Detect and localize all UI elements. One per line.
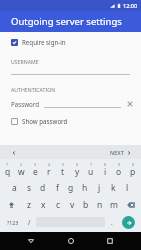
button[interactable]: 7 — [84, 161, 98, 179]
button[interactable]: Home — [63, 233, 79, 249]
staticText: ?123 — [7, 219, 19, 226]
staticText: 4 — [48, 162, 51, 167]
staticText: o — [116, 166, 122, 178]
staticText: q — [5, 166, 11, 178]
staticText: j — [98, 182, 101, 194]
staticText: s — [27, 182, 32, 194]
staticText: w — [18, 166, 25, 178]
button[interactable]: Require sign-in — [0, 36, 141, 48]
button[interactable]: f — [50, 179, 64, 196]
button[interactable]: s — [22, 179, 36, 196]
button[interactable]: 0 — [126, 161, 140, 179]
button[interactable]: Show password — [0, 116, 141, 126]
button[interactable]: Clear password — [125, 99, 135, 109]
button[interactable]: m — [107, 196, 121, 213]
staticText: USERNAME — [11, 58, 39, 65]
button[interactable]: c — [51, 196, 65, 213]
staticText: 2 — [20, 162, 23, 167]
staticText: i — [104, 166, 107, 178]
staticText: r — [47, 166, 51, 178]
staticText: 5 — [62, 162, 65, 167]
button[interactable]: NEXT — [108, 147, 133, 158]
staticText: l — [126, 182, 129, 194]
staticText: h — [82, 182, 88, 194]
button[interactable]: ?123 — [2, 214, 23, 230]
button[interactable]: n — [93, 196, 107, 213]
staticText: 0 — [132, 162, 135, 167]
button[interactable]: 2 — [14, 161, 28, 179]
staticText: t — [61, 166, 65, 178]
button[interactable]: Back — [23, 233, 39, 249]
staticText: z — [27, 199, 31, 211]
staticText: v — [70, 199, 75, 211]
button[interactable]: x — [36, 196, 51, 213]
staticText: g — [68, 182, 74, 194]
button[interactable]: 4 — [42, 161, 56, 179]
button[interactable]: 1 — [1, 161, 14, 179]
staticText: NEXT — [110, 149, 124, 156]
staticText: d — [40, 182, 46, 194]
staticText: 8 — [104, 162, 107, 167]
staticText: 12:00 — [123, 2, 138, 9]
staticText: Require sign-in — [22, 38, 66, 46]
button[interactable]: a — [7, 179, 22, 196]
button[interactable]: h — [78, 179, 92, 196]
staticText: Show password — [22, 117, 68, 125]
button[interactable]: 5 — [56, 161, 70, 179]
staticText: 6 — [76, 162, 79, 167]
staticText: p — [130, 166, 136, 178]
button[interactable]: v — [65, 196, 79, 213]
staticText: y — [75, 166, 80, 178]
button[interactable]: 3 — [28, 161, 42, 179]
button[interactable]: j — [92, 179, 106, 196]
staticText: n — [97, 199, 103, 211]
button[interactable]: / — [23, 214, 36, 230]
staticText: b — [83, 199, 89, 211]
staticText: a — [12, 182, 17, 194]
button[interactable]: Backspace — [121, 196, 140, 213]
staticText: . — [111, 218, 113, 227]
button[interactable]: l — [120, 179, 134, 196]
button[interactable]: Next — [122, 216, 135, 229]
button[interactable]: Previous field — [8, 147, 19, 158]
button[interactable]: Shift — [1, 196, 21, 213]
staticText: f — [56, 182, 59, 194]
button[interactable]: d — [36, 179, 50, 196]
staticText: Outgoing server settings — [11, 15, 122, 28]
button[interactable]: 6 — [70, 161, 84, 179]
staticText: 3 — [34, 162, 37, 167]
button[interactable]: g — [64, 179, 78, 196]
staticText: u — [88, 166, 94, 178]
staticText: c — [56, 199, 61, 211]
button[interactable]: z — [21, 196, 36, 213]
staticText: 1 — [6, 162, 9, 167]
staticText: e — [33, 166, 38, 178]
button[interactable]: 8 — [98, 161, 112, 179]
staticText: 7 — [90, 162, 93, 167]
staticText: AUTHENTICATION — [11, 86, 56, 93]
button[interactable]: 9 — [112, 161, 126, 179]
staticText: m — [110, 199, 118, 211]
button[interactable]: b — [79, 196, 93, 213]
button[interactable]: k — [106, 179, 120, 196]
staticText: k — [111, 182, 116, 194]
button[interactable]: Recents — [102, 233, 118, 249]
staticText: / — [28, 218, 31, 227]
staticText: Password — [11, 100, 39, 108]
staticText: x — [41, 199, 46, 211]
button[interactable] — [44, 100, 121, 108]
button[interactable]: . — [105, 214, 118, 230]
staticText: 9 — [118, 162, 121, 167]
